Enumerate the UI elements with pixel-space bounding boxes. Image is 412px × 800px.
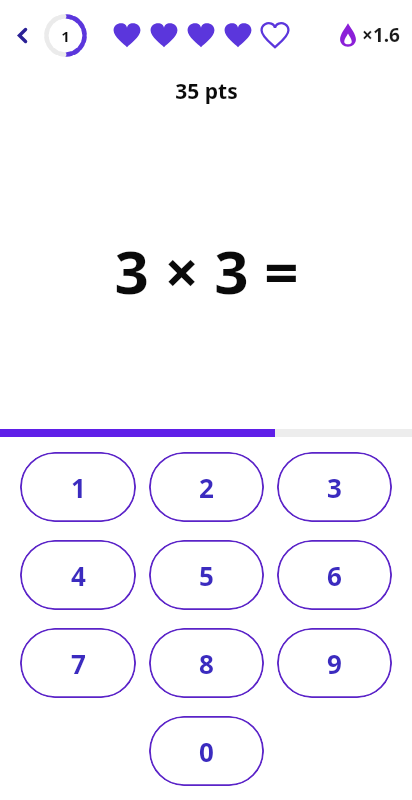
staticText: 3	[327, 470, 342, 505]
staticText: 1	[71, 470, 86, 505]
button[interactable]: Level 1 progress	[42, 12, 89, 59]
button[interactable]: 3	[277, 452, 392, 522]
staticText: 2	[199, 470, 214, 505]
button[interactable]: 0	[149, 716, 264, 786]
staticText: 0	[199, 734, 214, 769]
button[interactable]: 5	[149, 540, 264, 610]
staticText: ×1.6	[362, 22, 400, 48]
button[interactable]: 6	[277, 540, 392, 610]
staticText: 35 pts	[175, 77, 238, 106]
staticText: 1	[61, 26, 70, 46]
staticText: 3 × 3 =	[114, 230, 299, 312]
staticText: 5	[199, 558, 214, 593]
button[interactable]: 1	[20, 452, 136, 522]
button[interactable]: 8	[149, 628, 264, 698]
button[interactable]: Back	[5, 18, 39, 52]
staticText: 7	[71, 646, 86, 681]
button[interactable]: 4	[20, 540, 136, 610]
staticText: 4	[71, 558, 86, 593]
staticText: 6	[327, 558, 342, 593]
staticText: 8	[199, 646, 214, 681]
button[interactable]: 2	[149, 452, 264, 522]
button[interactable]: ×1.6	[339, 22, 400, 48]
button[interactable]: 9	[277, 628, 392, 698]
staticText: 9	[327, 646, 342, 681]
button[interactable]: 7	[20, 628, 136, 698]
